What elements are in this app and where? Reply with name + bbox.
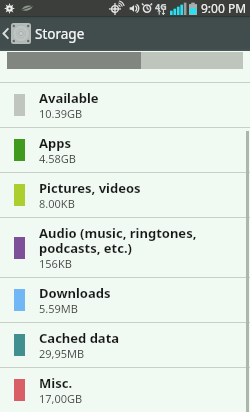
staticText: Storage (35, 25, 85, 43)
staticText: 4.58GB (39, 151, 76, 166)
staticText: 8.00KB (39, 196, 75, 211)
button[interactable]: Cached data (0, 323, 250, 367)
button[interactable]: Apps (0, 128, 250, 172)
staticText: Downloads (39, 284, 111, 302)
staticText: Pictures, videos (39, 179, 141, 197)
staticText: Apps (39, 134, 71, 152)
button[interactable]: Audio (music, ringtones, podcasts, etc.) (0, 218, 250, 277)
staticText: Misc. (39, 374, 73, 392)
staticText: Cached data (39, 329, 120, 347)
button[interactable]: Available (0, 83, 250, 127)
staticText: 9:00 PM (201, 0, 247, 16)
staticText: 4G (155, 0, 167, 12)
staticText: 5.59MB (39, 301, 78, 316)
button[interactable]: Back to Storage (0, 16, 250, 51)
staticText: Audio (music, ringtones, podcasts, etc.) (39, 224, 197, 257)
staticText: Available (39, 89, 99, 107)
button[interactable]: Downloads (0, 278, 250, 322)
staticText: 10.39GB (39, 106, 83, 121)
staticText: 17,00GB (39, 391, 83, 406)
button[interactable]: Pictures, videos (0, 173, 250, 217)
button[interactable]: Misc. (0, 368, 250, 412)
staticText: 156KB (39, 256, 72, 271)
staticText: 29,95MB (39, 346, 85, 361)
